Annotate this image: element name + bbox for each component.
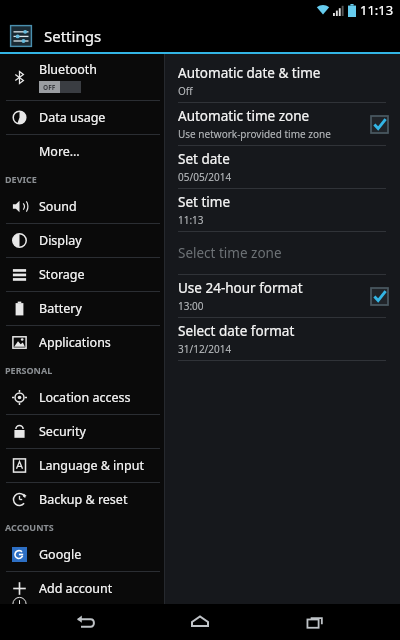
staticText: Security (39, 423, 86, 440)
staticText: 31/12/2014 (178, 342, 232, 356)
staticText: Set date (178, 150, 230, 168)
staticText: Backup & reset (39, 491, 128, 508)
staticText: Applications (39, 334, 111, 351)
button[interactable]: Data usage (0, 101, 164, 134)
staticText: Data usage (39, 109, 106, 126)
button[interactable]: Add account (0, 572, 164, 604)
button[interactable]: Select date format (178, 318, 400, 360)
staticText: Battery (39, 300, 82, 317)
staticText: Settings (44, 26, 102, 46)
button[interactable]: Location access (0, 381, 164, 414)
staticText: PERSONAL (5, 364, 53, 376)
staticText: Google (39, 546, 82, 563)
staticText: Set time (178, 193, 231, 211)
button[interactable]: Automatic date & time (178, 60, 400, 102)
staticText: Location access (39, 389, 131, 406)
staticText: Off (178, 84, 193, 98)
button[interactable]: Home (170, 604, 230, 640)
staticText: 11:13 (360, 1, 394, 19)
staticText: Select time zone (178, 244, 282, 262)
staticText: Use 24-hour format (178, 279, 303, 297)
staticText: Sound (39, 198, 77, 215)
button[interactable]: Applications (0, 326, 164, 359)
staticText: Automatic time zone (178, 107, 310, 125)
button[interactable]: Language & input (0, 449, 164, 482)
button[interactable]: Back (55, 604, 115, 640)
staticText: Add account (39, 580, 113, 597)
staticText: OFF (43, 83, 56, 92)
button[interactable]: Set date (178, 146, 400, 188)
button[interactable]: Automatic time zone (178, 103, 400, 145)
button[interactable]: Storage (0, 258, 164, 291)
button[interactable]: Select time zone (178, 232, 400, 274)
button[interactable]: Recent apps (285, 604, 345, 640)
button[interactable]: Sound (0, 190, 164, 223)
staticText: 13:00 (178, 299, 204, 313)
button[interactable]: More… (0, 135, 164, 168)
staticText: Language & input (39, 457, 144, 474)
button[interactable]: Battery (0, 292, 164, 325)
button[interactable]: Use 24-hour format (178, 275, 400, 317)
staticText: Select date format (178, 322, 295, 340)
staticText: Display (39, 232, 82, 249)
button[interactable]: Google (0, 538, 164, 571)
staticText: Use network-provided time zone (178, 127, 331, 141)
staticText: Storage (39, 266, 85, 283)
button[interactable]: Bluetooth (0, 54, 164, 100)
button[interactable]: Display (0, 224, 164, 257)
button[interactable]: Backup & reset (0, 483, 164, 516)
staticText: 05/05/2014 (178, 170, 232, 184)
button[interactable]: Security (0, 415, 164, 448)
staticText: Automatic date & time (178, 64, 321, 82)
staticText: Bluetooth (39, 61, 98, 78)
staticText: DEVICE (5, 173, 37, 185)
button[interactable]: Set time (178, 189, 400, 231)
staticText: More… (39, 143, 80, 160)
staticText: ACCOUNTS (5, 521, 54, 533)
staticText: 11:13 (178, 213, 204, 227)
